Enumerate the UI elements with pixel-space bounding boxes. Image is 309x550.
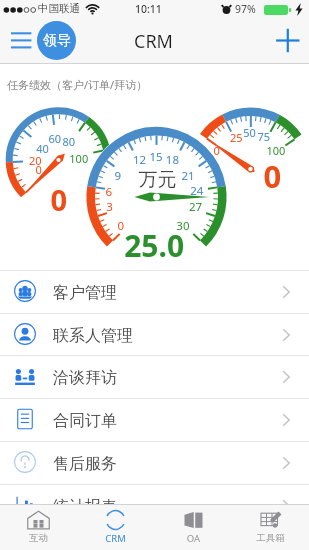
button[interactable]: 客户管理 bbox=[0, 271, 309, 313]
staticText: 领导 bbox=[43, 32, 71, 50]
button[interactable]: 合同订单 bbox=[0, 399, 309, 441]
staticText: 客户管理 bbox=[53, 283, 117, 303]
staticText: 中国联通 bbox=[38, 2, 80, 15]
staticText: 统计报表 bbox=[53, 497, 117, 517]
button[interactable]: Menu bbox=[4, 22, 38, 60]
staticText: CRM bbox=[134, 29, 173, 54]
button[interactable]: Add bbox=[270, 22, 306, 58]
button[interactable]: 工具箱 bbox=[232, 505, 309, 550]
button[interactable]: 洽谈拜访 bbox=[0, 356, 309, 398]
staticText: 合同订单 bbox=[53, 411, 117, 431]
staticText: 工具箱 bbox=[232, 532, 309, 546]
staticText: 联系人管理 bbox=[53, 326, 133, 346]
staticText: OA bbox=[155, 532, 232, 546]
staticText: 10:11 bbox=[135, 2, 162, 16]
staticText: 售后服务 bbox=[53, 454, 117, 474]
staticText: 互动 bbox=[0, 532, 77, 546]
button[interactable]: 售后服务 bbox=[0, 442, 309, 484]
staticText: 洽谈拜访 bbox=[53, 368, 117, 388]
button[interactable]: 统计报表 bbox=[0, 485, 309, 527]
button[interactable]: 互动 bbox=[0, 505, 77, 550]
button[interactable]: 联系人管理 bbox=[0, 314, 309, 356]
staticText: 97% bbox=[235, 2, 256, 16]
staticText: CRM bbox=[77, 532, 154, 546]
button[interactable]: OA bbox=[155, 505, 232, 550]
staticText: 任务绩效（客户/订单/拜访） bbox=[7, 77, 148, 92]
button[interactable]: CRM bbox=[77, 505, 154, 550]
button[interactable]: 领导 bbox=[37, 21, 76, 60]
